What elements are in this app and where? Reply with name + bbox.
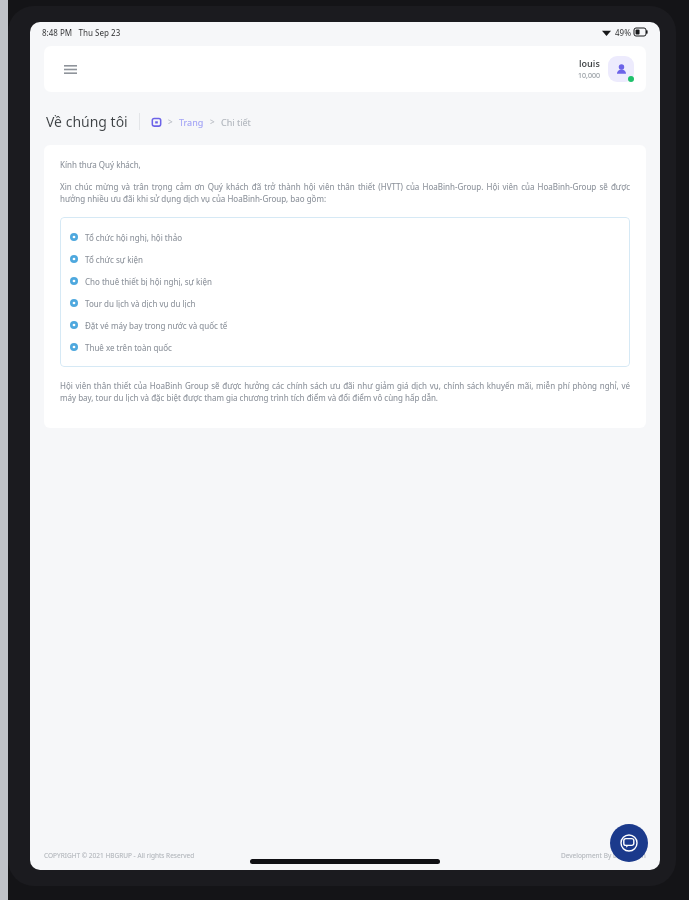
staticText: Về chúng tôi xyxy=(46,112,128,131)
staticText: Xin chúc mừng và trân trọng cảm ơn Quý k… xyxy=(60,181,630,205)
button[interactable]: Cho thuê thiết bị hội nghị, sự kiện xyxy=(70,270,620,292)
staticText: Hội viên thân thiết của HoaBinh Group sẽ… xyxy=(60,380,630,404)
staticText: Trang xyxy=(179,116,204,128)
staticText: 49% xyxy=(615,27,631,38)
staticText: Thuê xe trên toàn quốc xyxy=(85,342,172,353)
staticText: 10,000 xyxy=(578,71,600,81)
staticText: Chi tiết xyxy=(221,116,251,128)
button[interactable]: Tổ chức sự kiện xyxy=(70,248,620,270)
staticText: Đặt vé máy bay trong nước và quốc tế xyxy=(85,320,228,331)
button[interactable]: Tour du lịch và dịch vụ du lịch xyxy=(70,292,620,314)
staticText: Tổ chức hội nghị, hội thảo xyxy=(85,232,183,243)
staticText: louis xyxy=(579,57,600,69)
button[interactable]: Chat support xyxy=(610,824,648,862)
staticText: Development By Louis Tuan xyxy=(561,851,646,860)
staticText: Tổ chức sự kiện xyxy=(85,254,143,265)
staticText: Cho thuê thiết bị hội nghị, sự kiện xyxy=(85,276,212,287)
staticText: 8:48 PM Thu Sep 23 xyxy=(42,27,121,38)
staticText: COPYRIGHT © 2021 HBGRUP - All rights Res… xyxy=(44,851,195,860)
button[interactable]: Menu xyxy=(58,57,82,81)
button[interactable]: Đặt vé máy bay trong nước và quốc tế xyxy=(70,314,620,336)
button[interactable]: Trang xyxy=(179,116,204,128)
staticText: Kính thưa Quý khách, xyxy=(60,159,141,170)
button[interactable]: louis xyxy=(578,56,634,82)
button[interactable]: Tổ chức hội nghị, hội thảo xyxy=(70,226,620,248)
staticText: > xyxy=(210,116,215,127)
button[interactable]: Home xyxy=(151,116,162,127)
button[interactable]: Thuê xe trên toàn quốc xyxy=(70,336,620,358)
staticText: Tour du lịch và dịch vụ du lịch xyxy=(85,298,196,309)
staticText: > xyxy=(168,116,173,127)
